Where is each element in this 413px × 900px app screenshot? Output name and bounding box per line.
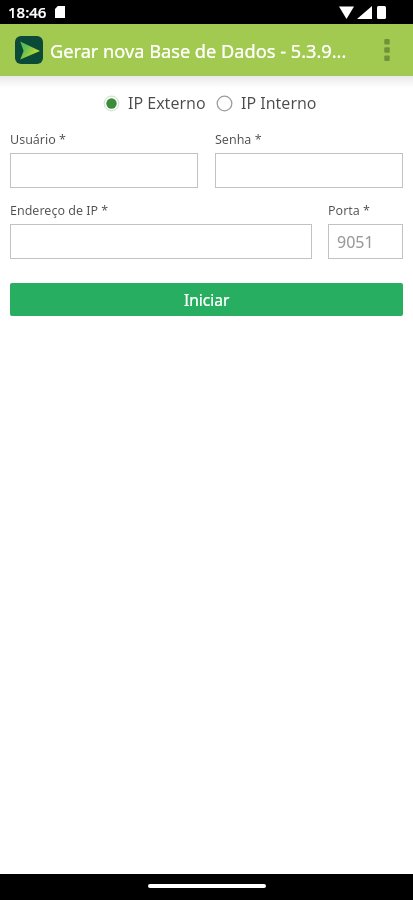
staticText: IP Externo [128,92,206,114]
button[interactable]: IP Externo [102,92,206,114]
staticText: 18:46 [8,2,47,22]
staticText: Iniciar [184,289,230,310]
button[interactable]: More options [365,28,409,72]
staticText: 9051 [337,231,374,253]
staticText: Usuário * [10,131,66,148]
button[interactable]: 9051 [328,224,403,259]
button[interactable] [215,153,403,188]
staticText: Porta * [328,202,370,219]
staticText: IP Interno [241,92,317,114]
button[interactable]: IP Interno [215,92,317,114]
staticText: Gerar nova Base de Dados - 5.3.9... [50,39,365,64]
button[interactable]: Iniciar [10,283,403,316]
staticText: Senha * [215,131,262,148]
staticText: Endereço de IP * [10,202,109,219]
button[interactable] [10,224,312,259]
button[interactable] [10,153,198,188]
